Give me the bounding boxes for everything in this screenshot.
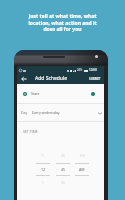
button[interactable]: Back [19,74,29,84]
staticText: State [31,91,40,96]
staticText: 24% [77,68,83,72]
staticText: AM [79,167,85,172]
staticText: 12:50 [89,68,97,72]
staticText: 46 [61,181,65,185]
staticText: PM [80,154,85,158]
staticText: Just tell at what time, what location, w… [0,13,125,32]
staticText: Every wednesday [32,110,60,115]
staticText: 12 [41,167,46,172]
staticText: 45 [61,167,66,172]
button[interactable]: SUBMIT [86,74,104,84]
staticText: 11 [41,154,45,158]
staticText: SET TIME [23,129,38,134]
staticText: Add Schedule [35,75,67,82]
staticText: SUBMIT [89,77,101,81]
staticText: 44 [61,154,65,158]
button[interactable]: Day [17,104,104,121]
button[interactable]: PM [75,154,89,185]
button[interactable]: 11 [36,154,50,185]
staticText: 1 [42,181,44,185]
button[interactable]: State [17,84,104,103]
staticText: Day [21,110,28,115]
button[interactable]: 44 [56,154,70,185]
